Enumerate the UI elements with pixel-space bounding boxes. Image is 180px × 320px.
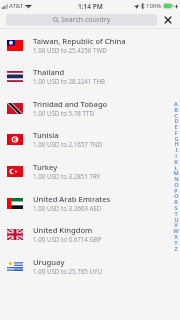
staticText: X — [174, 233, 178, 239]
staticText: J — [175, 152, 177, 158]
staticText: K — [174, 158, 178, 164]
staticText: United Arab Emirates — [33, 194, 111, 204]
staticText: D — [174, 117, 179, 123]
button[interactable]: Trinidad and Tobago — [0, 92, 180, 124]
staticText: U — [174, 216, 179, 222]
staticText: AT&T — [9, 2, 23, 10]
staticText: R — [174, 198, 178, 204]
staticText: 1.00 USD to 2.1657 TND — [33, 140, 103, 148]
staticText: A — [174, 100, 178, 106]
staticText: L — [174, 164, 178, 170]
staticText: Tunisia — [33, 130, 59, 140]
staticText: Trinidad and Tobago — [33, 99, 108, 109]
staticText: Q — [174, 192, 179, 198]
button[interactable]: Clear search — [160, 13, 175, 26]
button[interactable]: Turkey — [0, 155, 180, 187]
staticText: United Kingdom — [33, 225, 93, 235]
staticText: V — [174, 221, 178, 227]
button[interactable]: Thailand — [0, 60, 180, 92]
staticText: Thailand — [33, 67, 65, 77]
staticText: C — [174, 112, 178, 118]
staticText: P — [174, 187, 178, 193]
staticText: 1.00 USD to 3.2851 TRY — [33, 172, 101, 180]
staticText: 1:14 PM — [78, 2, 103, 11]
staticText: E — [174, 123, 178, 129]
button[interactable]: Uruguay — [0, 250, 180, 282]
staticText: I — [175, 146, 178, 152]
staticText: M — [173, 169, 179, 175]
button[interactable]: Tunisia — [0, 123, 180, 155]
staticText: O — [174, 181, 179, 187]
staticText: 1.00 USD to 25.4256 TWD — [33, 46, 107, 54]
staticText: Z — [174, 245, 178, 251]
staticText: G — [174, 135, 179, 141]
staticText: F — [174, 129, 178, 135]
staticText: W — [173, 227, 179, 233]
button[interactable]: Alphabet index — [171, 100, 180, 256]
staticText: 1.00 USD to 0.6714 GBP — [33, 235, 102, 243]
staticText: N — [174, 175, 179, 181]
staticText: T — [174, 210, 178, 216]
button[interactable]: Taiwan, Republic of China — [0, 29, 180, 61]
staticText: 1.00 USD to 25.785 UYU — [33, 267, 103, 275]
button[interactable]: United Arab Emirates — [0, 187, 180, 219]
staticText: S — [174, 204, 178, 210]
staticText: Taiwan, Republic of China — [33, 36, 126, 46]
staticText: B — [174, 106, 178, 112]
button[interactable]: United Kingdom — [0, 218, 180, 250]
staticText: 1.00 USD to 28.2241 THB — [33, 77, 106, 85]
staticText: 1.00 USD to 5.78 TTD — [33, 109, 94, 117]
staticText: Turkey — [33, 162, 58, 172]
staticText: Uruguay — [33, 257, 65, 267]
staticText: 100% — [146, 2, 162, 10]
staticText: 1.00 USD to 3.2663 AED — [33, 204, 102, 212]
staticText: H — [174, 140, 179, 146]
button[interactable]: Search country — [6, 14, 157, 26]
staticText: Y — [174, 239, 178, 245]
staticText: Search country — [61, 15, 111, 25]
